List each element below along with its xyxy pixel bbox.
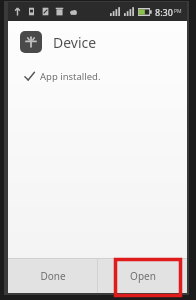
button[interactable]: Done [8,259,97,293]
button[interactable]: Open [98,259,187,293]
staticText: App installed. [40,70,101,83]
other: Open button highlight [114,258,182,297]
staticText: Done [40,269,66,283]
staticText: PM [174,8,182,15]
staticText: Device [53,33,97,52]
staticText: Open [130,269,156,283]
staticText: 8:30 [155,6,173,18]
